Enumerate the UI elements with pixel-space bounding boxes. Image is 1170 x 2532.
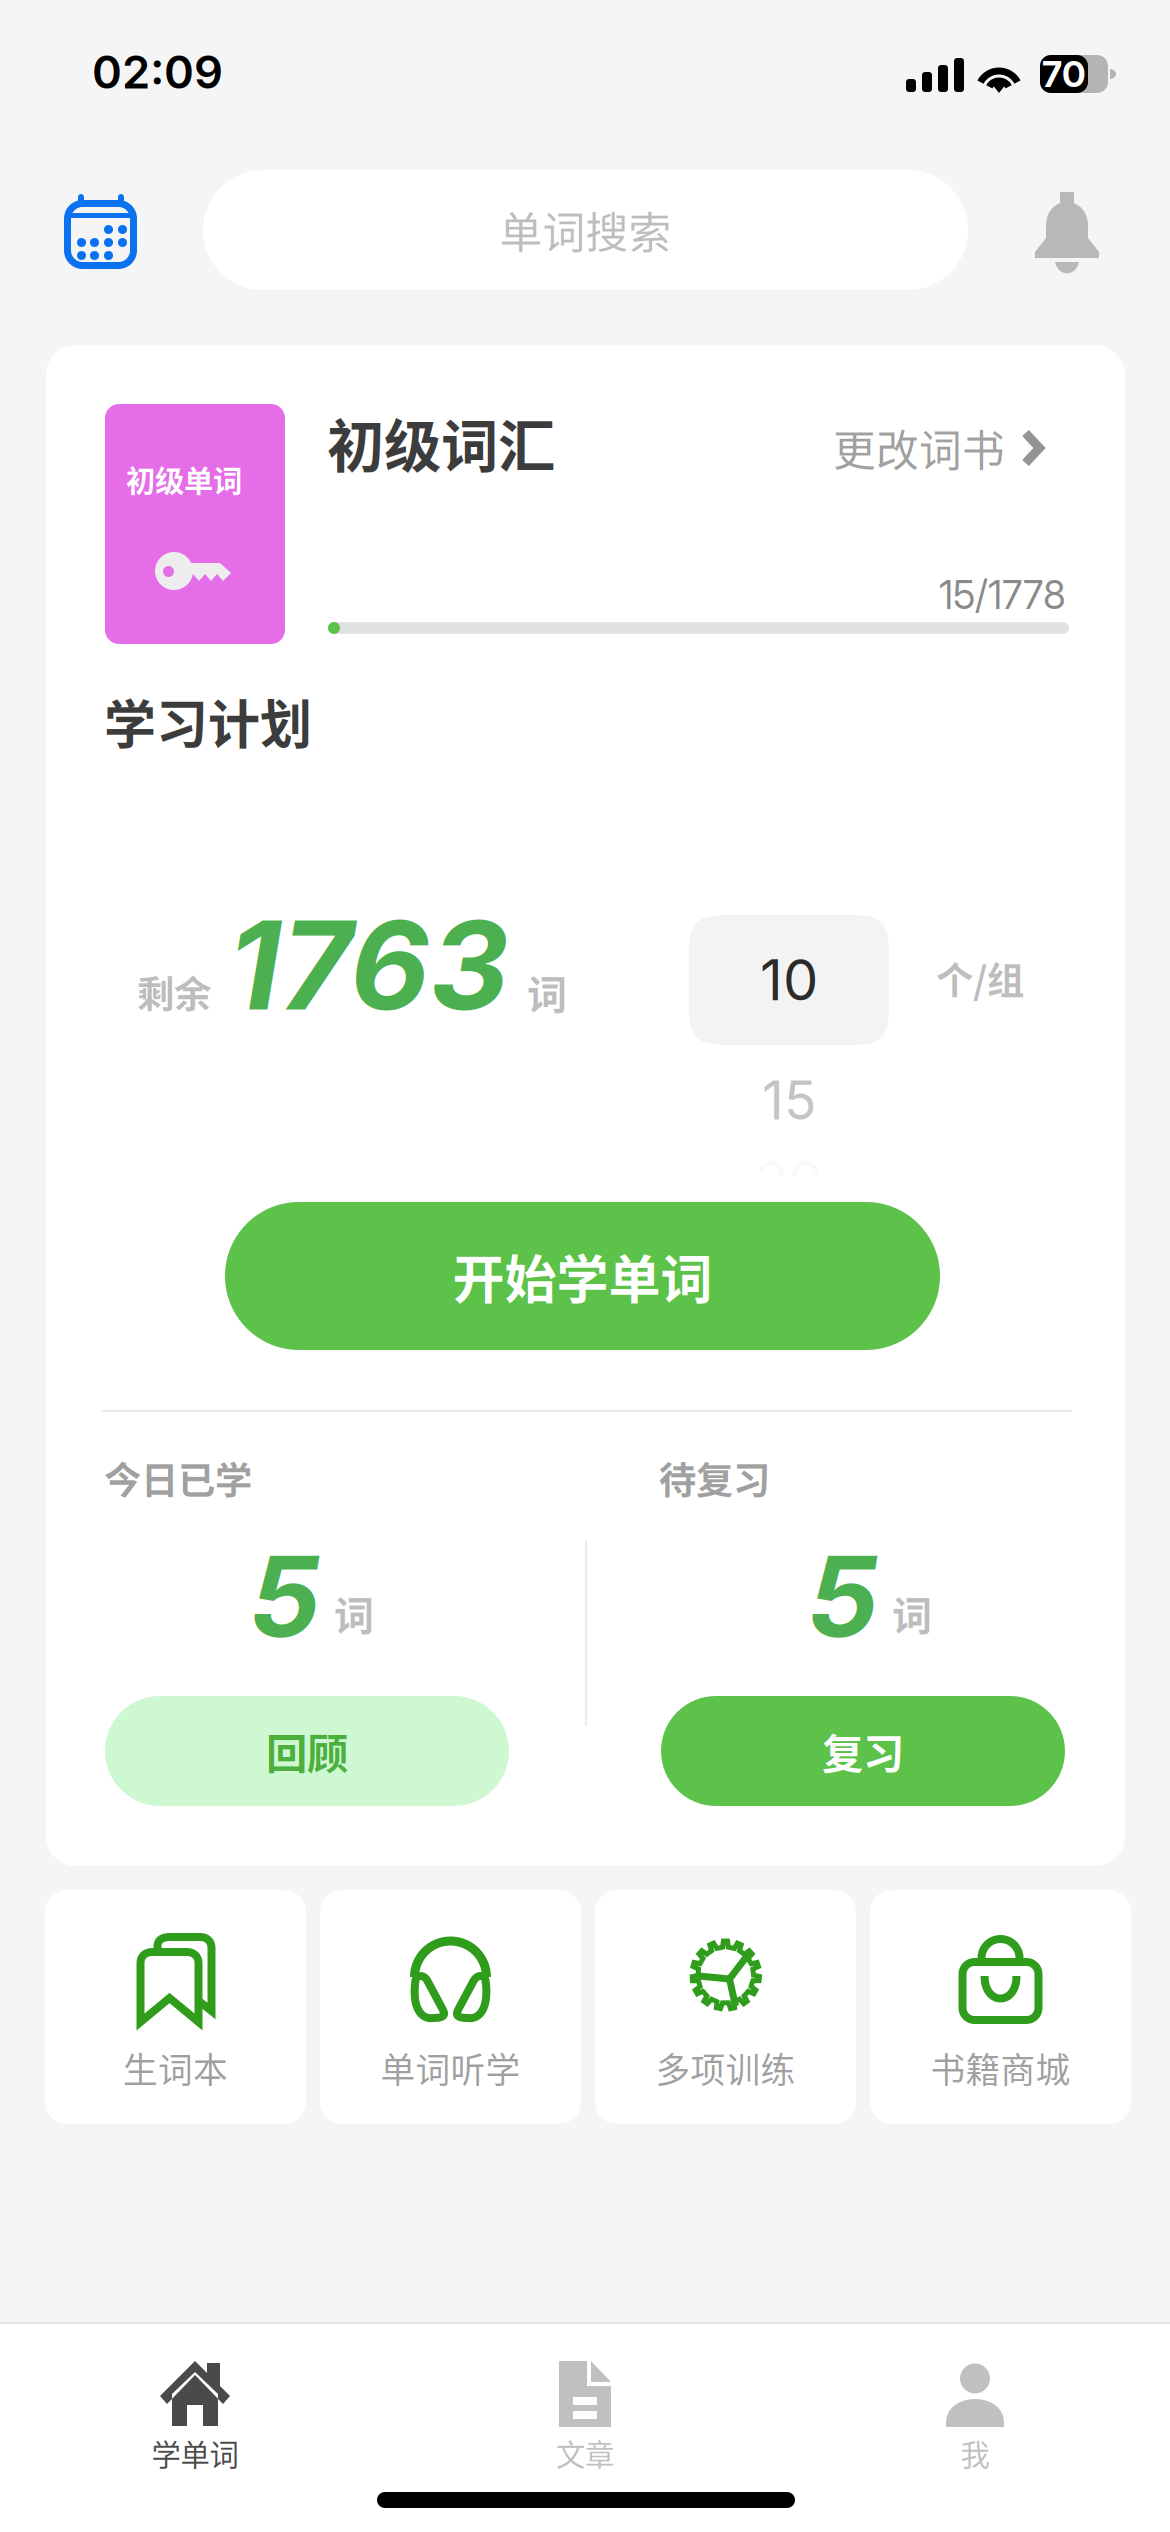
staticText: 初级单词	[126, 458, 242, 500]
staticText: 5	[807, 1528, 879, 1664]
staticText: 复习	[822, 1721, 904, 1781]
button[interactable]: 更改词书	[833, 419, 1065, 477]
staticText: 词	[334, 1584, 374, 1642]
staticText: 我	[960, 2432, 989, 2474]
button[interactable]: Calendar	[64, 194, 138, 269]
button[interactable]: 多项训练	[595, 1890, 856, 2124]
button[interactable]: 复习	[661, 1696, 1065, 1806]
button[interactable]: 学单词	[0, 2324, 390, 2472]
staticText: 10	[760, 946, 818, 1014]
button[interactable]: 生词本	[45, 1890, 306, 2124]
staticText: 5	[249, 1528, 321, 1664]
staticText: 书籍商城	[930, 2043, 1070, 2093]
staticText: 20	[755, 1148, 822, 1212]
button[interactable]: 我	[780, 2324, 1170, 2472]
button[interactable]: 单词听学	[320, 1890, 581, 2124]
button[interactable]: 单词搜索	[203, 170, 968, 290]
button[interactable]: 回顾	[105, 1696, 509, 1806]
staticText: 词	[527, 963, 567, 1021]
staticText: 更改词书	[833, 417, 1005, 479]
staticText: 生词本	[123, 2043, 228, 2093]
staticText: 初级词汇	[327, 400, 555, 483]
staticText: 15	[762, 1068, 816, 1132]
staticText: 个/组	[936, 951, 1024, 1005]
staticText: 学单词	[151, 2432, 238, 2474]
button[interactable]: 书籍商城	[870, 1890, 1131, 2124]
staticText: 1763	[228, 891, 509, 1039]
staticText: 剩余	[137, 965, 211, 1019]
button[interactable]: 10	[689, 915, 889, 1045]
staticText: 单词搜索	[499, 199, 671, 261]
staticText: 待复习	[659, 1451, 770, 1505]
staticText: 文章	[556, 2432, 614, 2474]
staticText: 多项训练	[655, 2043, 795, 2093]
staticText: 词	[892, 1584, 932, 1642]
staticText: 回顾	[266, 1721, 348, 1781]
staticText: 02:09	[92, 45, 223, 99]
staticText: 今日已学	[104, 1451, 252, 1505]
staticText: 学习计划	[104, 683, 312, 759]
staticText: 开始学单词	[452, 1238, 712, 1314]
button[interactable]: Notifications	[1035, 192, 1099, 268]
staticText: 单词听学	[380, 2043, 520, 2093]
button[interactable]: 文章	[390, 2324, 780, 2472]
staticText: 15/1778	[939, 572, 1066, 618]
staticText: 70	[1042, 52, 1086, 96]
button[interactable]: 开始学单词	[225, 1202, 940, 1350]
